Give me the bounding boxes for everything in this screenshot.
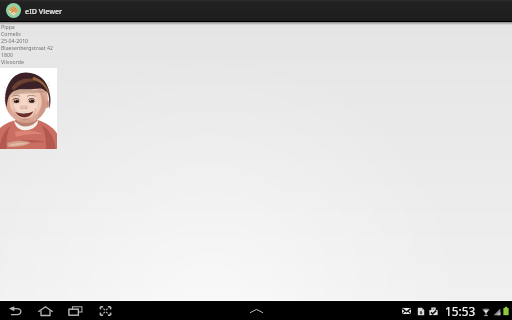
button[interactable]: Home bbox=[30, 301, 60, 320]
button[interactable]: ID photo bbox=[0, 68, 57, 149]
staticText: eID Viewer bbox=[25, 6, 63, 16]
staticText: Cornelis bbox=[1, 30, 21, 37]
button[interactable]: eID Viewer app icon bbox=[6, 3, 21, 18]
staticText: Blaesenbergstraat 42 bbox=[1, 44, 53, 51]
staticText: 1800 bbox=[1, 51, 13, 58]
button[interactable]: Expand bbox=[246, 301, 266, 320]
staticText: 15:53 bbox=[445, 303, 476, 319]
button[interactable]: Screenshot bbox=[90, 301, 120, 320]
staticText: Pippa bbox=[1, 23, 15, 30]
staticText: Vilvoorde bbox=[1, 58, 24, 65]
button[interactable]: Back bbox=[0, 301, 30, 320]
staticText: 25-04-2010 bbox=[1, 37, 29, 44]
button[interactable]: Recent apps bbox=[60, 301, 90, 320]
